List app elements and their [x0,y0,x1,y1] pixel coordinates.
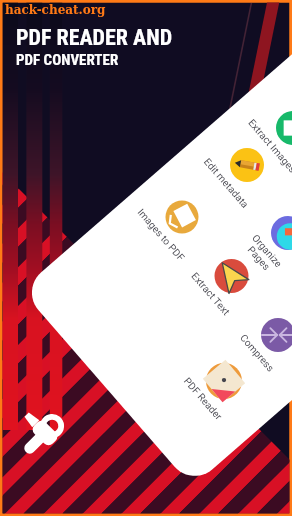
button[interactable]: Tools [20,410,68,458]
